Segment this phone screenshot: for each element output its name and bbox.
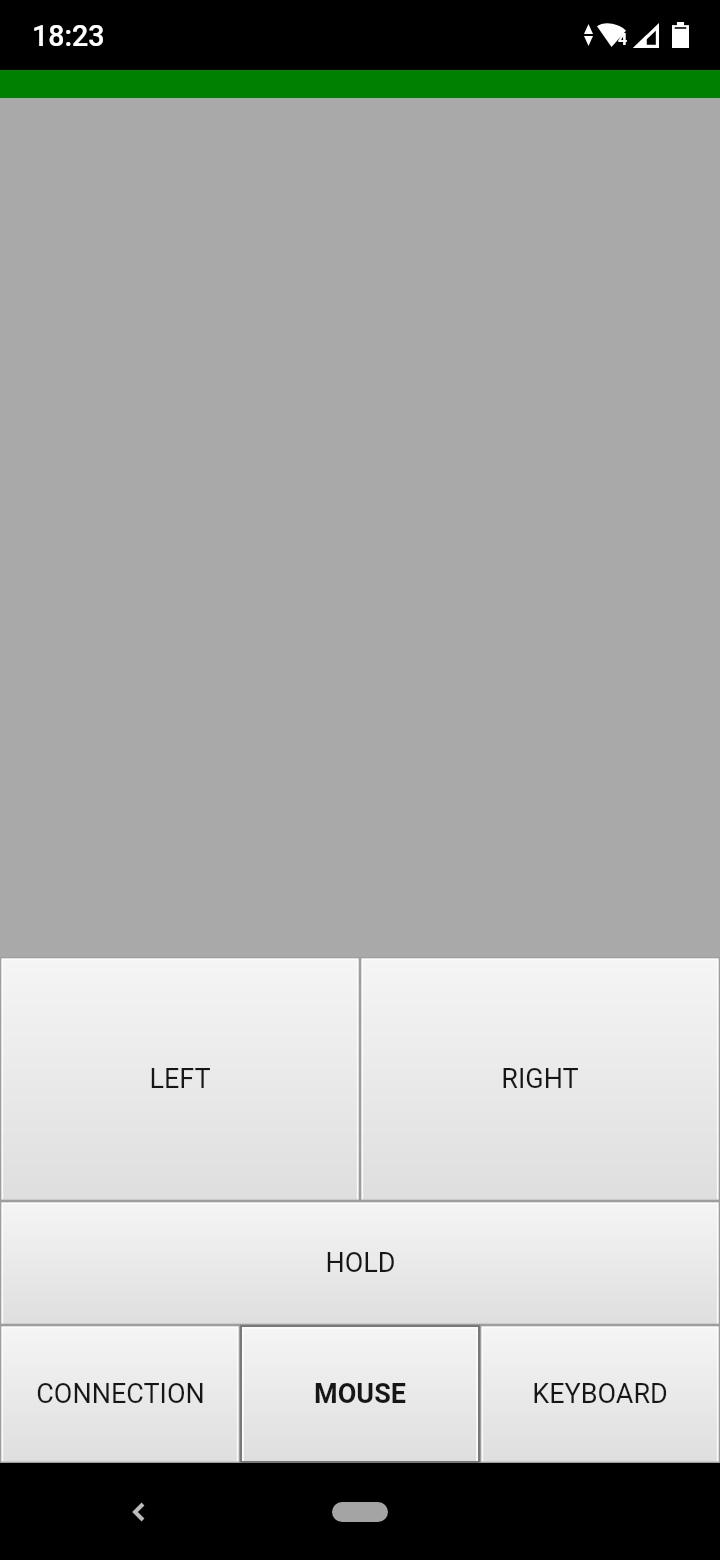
staticText: KEYBOARD — [532, 1378, 668, 1410]
button[interactable]: KEYBOARD — [480, 1325, 720, 1463]
button[interactable]: CONNECTION — [0, 1325, 240, 1463]
staticText: 4 — [618, 30, 628, 49]
staticText: CONNECTION — [36, 1378, 205, 1410]
staticText: MOUSE — [314, 1378, 406, 1410]
button[interactable]: LEFT — [0, 957, 360, 1201]
button[interactable]: MOUSE — [240, 1325, 480, 1463]
button[interactable]: Home — [332, 1502, 388, 1522]
staticText: HOLD — [325, 1247, 396, 1279]
button[interactable]: Back — [104, 1477, 174, 1547]
staticText: RIGHT — [501, 1063, 579, 1095]
button[interactable]: RIGHT — [360, 957, 720, 1201]
button[interactable]: HOLD — [0, 1201, 720, 1325]
staticText: LEFT — [149, 1063, 211, 1095]
staticText: 18:23 — [32, 19, 105, 53]
